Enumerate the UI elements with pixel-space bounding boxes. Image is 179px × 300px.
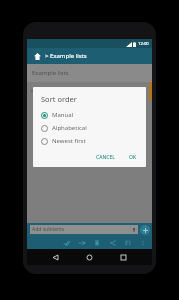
button[interactable]: Home [31, 50, 43, 62]
staticText: > Example lists [45, 52, 87, 60]
staticText: Example lists [32, 69, 69, 77]
other: Voice input [132, 228, 136, 232]
button[interactable]: Home [84, 252, 95, 263]
button[interactable]: Alphabetical [41, 124, 140, 132]
button[interactable]: Delete [91, 237, 102, 248]
button[interactable]: Manual [41, 111, 140, 119]
staticText: CANCEL [96, 154, 115, 161]
button[interactable]: Sort [122, 237, 133, 248]
button[interactable]: Recents [118, 252, 129, 263]
staticText: Sort order [41, 94, 77, 104]
button[interactable]: Newest first [41, 137, 140, 145]
staticText: OK [129, 154, 137, 161]
staticText: Newest first [52, 137, 86, 145]
button[interactable]: OK [126, 152, 140, 163]
staticText: Alphabetical [52, 124, 87, 132]
button[interactable]: Share [107, 237, 118, 248]
staticText: 12:00 [138, 41, 149, 47]
button[interactable]: CANCEL [93, 152, 118, 163]
button[interactable]: Move [76, 237, 87, 248]
button[interactable]: More options [137, 237, 148, 248]
staticText: Manual [52, 111, 74, 119]
button[interactable]: Mark all done [61, 237, 72, 248]
staticText: Add subitems [32, 226, 65, 233]
button[interactable]: Back [50, 252, 61, 263]
button[interactable]: Add subitems [30, 225, 138, 234]
button[interactable]: Add [140, 225, 150, 235]
